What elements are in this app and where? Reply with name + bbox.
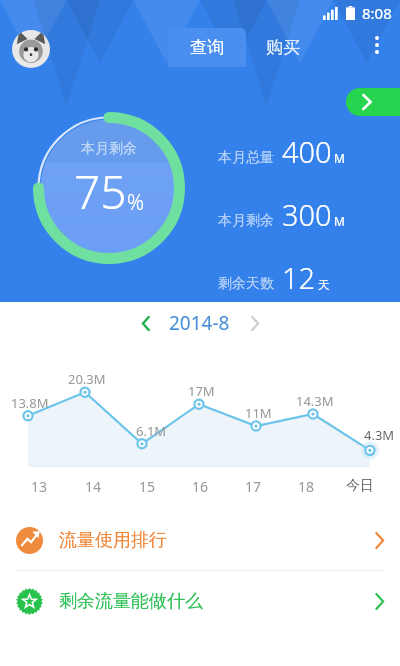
staticText: 查询 [190, 37, 224, 58]
staticText: 流量使用排行 [59, 529, 167, 552]
staticText: 400 [282, 132, 332, 171]
staticText: 75 [74, 160, 127, 223]
staticText: 今日 [346, 477, 374, 495]
staticText: 16 [192, 477, 209, 496]
button[interactable]: 剩余流量能做什么 [0, 571, 400, 631]
button[interactable]: Expand [346, 88, 400, 116]
button[interactable]: Next month [240, 308, 270, 338]
staticText: 剩余天数 [218, 275, 274, 293]
staticText: 14 [85, 477, 102, 496]
staticText: 8:08 [362, 3, 392, 23]
staticText: M [334, 150, 345, 166]
staticText: 购买 [266, 37, 300, 58]
staticText: 20.3M [68, 370, 106, 388]
staticText: 300 [282, 195, 332, 234]
button[interactable]: More options [360, 28, 394, 62]
staticText: 6.1M [136, 422, 167, 440]
staticText: % [127, 188, 145, 217]
staticText: 剩余流量能做什么 [59, 590, 203, 613]
staticText: 11M [245, 404, 272, 422]
staticText: 2014-8 [169, 310, 230, 336]
staticText: 17 [245, 477, 262, 496]
staticText: M [334, 213, 345, 229]
staticText: 13.8M [11, 394, 49, 412]
button[interactable]: 购买 [246, 28, 320, 67]
staticText: 17M [188, 382, 215, 400]
staticText: 本月总量 [218, 149, 274, 167]
staticText: 天 [318, 277, 330, 292]
button[interactable]: Previous month [131, 308, 161, 338]
staticText: 本月剩余 [81, 140, 137, 158]
staticText: 4.3M [364, 426, 395, 444]
staticText: 15 [139, 477, 156, 496]
staticText: 12 [282, 258, 316, 297]
button[interactable]: 流量使用排行 [0, 510, 400, 570]
button[interactable]: Profile [12, 30, 50, 68]
button[interactable]: 查询 [168, 28, 246, 67]
staticText: 14.3M [296, 392, 334, 410]
staticText: 18 [298, 477, 315, 496]
staticText: 本月剩余 [218, 212, 274, 230]
staticText: 13 [31, 477, 48, 496]
